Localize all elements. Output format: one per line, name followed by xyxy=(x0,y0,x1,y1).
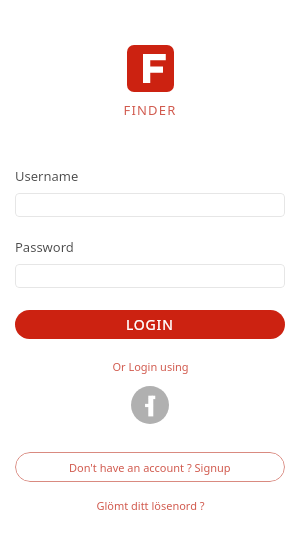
staticText: Username xyxy=(15,167,79,185)
button[interactable] xyxy=(15,193,285,217)
staticText: Don't have an account ? Signup xyxy=(69,460,231,475)
staticText: FINDER xyxy=(123,101,177,119)
button[interactable]: Don't have an account ? Signup xyxy=(15,452,285,482)
button[interactable]: Glömt ditt lösenord ? xyxy=(96,498,205,513)
staticText: Or Login using xyxy=(112,359,189,374)
button[interactable] xyxy=(15,264,285,288)
staticText: Password xyxy=(15,238,74,256)
button[interactable]: LOGIN xyxy=(15,310,285,339)
staticText: LOGIN xyxy=(126,315,174,334)
staticText: Glömt ditt lösenord ? xyxy=(96,498,205,513)
button[interactable]: Login with Facebook xyxy=(131,386,169,424)
